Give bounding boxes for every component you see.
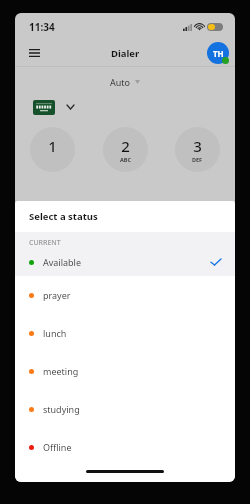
button[interactable]: lunch bbox=[15, 314, 235, 352]
staticText: ABC bbox=[120, 156, 131, 163]
staticText: lunch bbox=[43, 327, 67, 339]
staticText: 11:34 bbox=[29, 20, 55, 34]
button[interactable]: Account TH bbox=[207, 42, 229, 64]
button[interactable]: Available bbox=[15, 248, 235, 276]
staticText: TH bbox=[213, 48, 224, 59]
button[interactable]: 3 bbox=[175, 127, 220, 172]
button[interactable]: 1 bbox=[30, 127, 75, 172]
staticText: Auto bbox=[110, 76, 131, 88]
staticText: Select a status bbox=[29, 210, 98, 223]
staticText: DEF bbox=[192, 156, 203, 163]
staticText: CURRENT bbox=[29, 238, 61, 248]
button[interactable]: Open navigation menu bbox=[23, 42, 45, 64]
staticText: Dialer bbox=[111, 47, 140, 60]
button[interactable]: prayer bbox=[15, 276, 235, 314]
staticText: Offline bbox=[43, 441, 72, 453]
button[interactable]: 2 bbox=[103, 127, 148, 172]
button[interactable]: meeting bbox=[15, 352, 235, 390]
button[interactable]: studying bbox=[15, 390, 235, 428]
staticText: studying bbox=[43, 403, 80, 415]
staticText: 1 bbox=[48, 136, 57, 156]
staticText: 2 bbox=[121, 136, 130, 156]
staticText: Available bbox=[43, 256, 81, 268]
staticText: meeting bbox=[43, 365, 79, 377]
button[interactable]: SIM card bbox=[33, 100, 55, 115]
staticText: 3 bbox=[193, 136, 202, 156]
button[interactable]: Offline bbox=[15, 428, 235, 466]
button[interactable]: Select SIM bbox=[64, 101, 76, 113]
button[interactable]: Auto bbox=[110, 76, 140, 88]
staticText: prayer bbox=[43, 289, 71, 301]
